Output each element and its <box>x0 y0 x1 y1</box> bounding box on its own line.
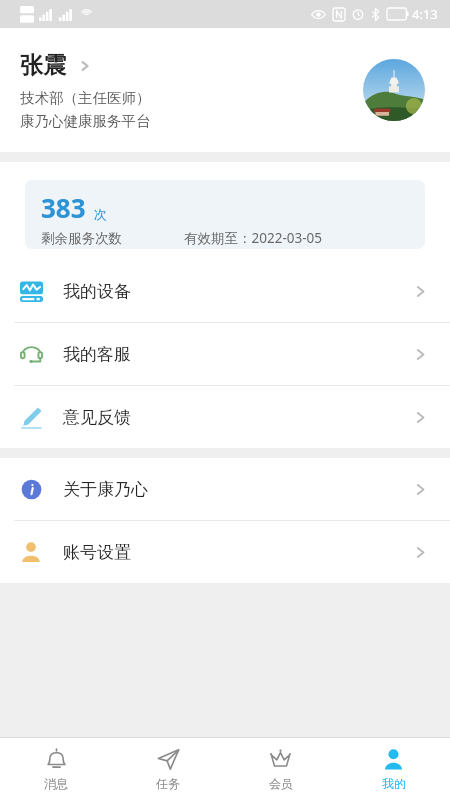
staticText: 我的设备 <box>63 281 131 302</box>
staticText: 消息 <box>44 776 68 791</box>
staticText: 康乃心健康服务平台 <box>20 112 151 130</box>
staticText: 账号设置 <box>63 542 131 563</box>
button[interactable]: 账号设置 <box>0 521 450 583</box>
staticText: 任务 <box>156 776 180 791</box>
button[interactable]: Profile photo <box>363 59 425 121</box>
staticText: 有效期至：2022-03-05 <box>184 229 322 247</box>
staticText: 剩余服务次数 <box>41 230 122 247</box>
staticText: 383 <box>41 190 86 225</box>
button[interactable]: 我的设备 <box>0 260 450 322</box>
staticText: 技术部（主任医师） <box>20 89 151 107</box>
staticText: 意见反馈 <box>63 407 131 428</box>
button[interactable]: 我的客服 <box>0 323 450 385</box>
button[interactable]: 意见反馈 <box>0 386 450 448</box>
staticText: 我的客服 <box>63 344 131 365</box>
staticText: 关于康乃心 <box>63 479 148 500</box>
button[interactable]: 消息 <box>0 738 112 800</box>
staticText: 次 <box>94 206 107 222</box>
button[interactable]: 383 <box>25 180 425 249</box>
staticText: 4:13 <box>412 5 438 23</box>
button[interactable]: 关于康乃心 <box>0 458 450 520</box>
staticText: 张震 <box>20 51 66 80</box>
button[interactable]: 会员 <box>224 738 337 800</box>
button[interactable]: 张震 <box>0 28 450 152</box>
button[interactable]: 任务 <box>112 738 224 800</box>
staticText: 会员 <box>269 776 293 791</box>
staticText: 我的 <box>382 776 406 791</box>
button[interactable]: 我的 <box>337 738 450 800</box>
